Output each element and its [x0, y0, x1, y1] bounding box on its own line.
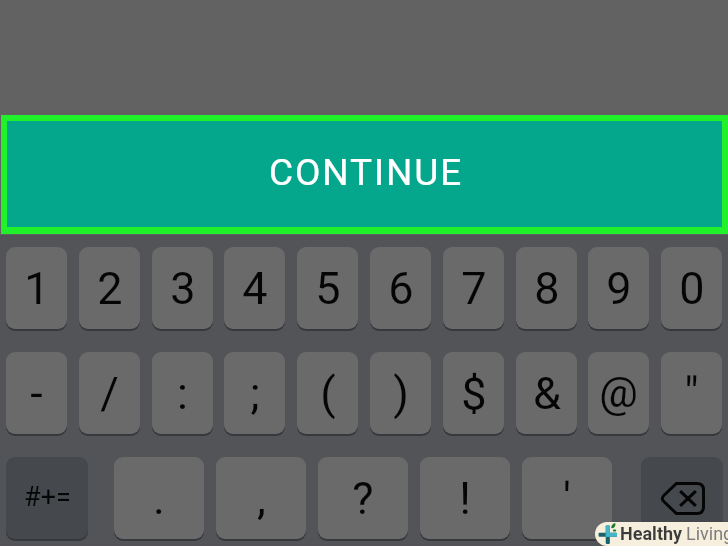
staticText: CONTINUE [269, 151, 464, 194]
staticText: ) [393, 367, 409, 420]
button[interactable]: 6 [370, 247, 431, 329]
staticText: ! [459, 472, 471, 525]
staticText: & [533, 367, 561, 420]
staticText: @ [599, 367, 638, 417]
staticText: 2 [97, 262, 123, 315]
staticText: 3 [170, 262, 196, 315]
button[interactable]: 8 [516, 247, 577, 329]
button[interactable]: : [152, 352, 213, 434]
button[interactable]: . [114, 457, 204, 539]
button[interactable]: ) [370, 352, 431, 434]
button[interactable]: ″ [661, 352, 722, 434]
staticText: 1 [24, 262, 50, 315]
staticText: - [30, 367, 43, 420]
button[interactable]: ? [318, 457, 408, 539]
staticText: Living [686, 523, 728, 544]
staticText: $ [461, 367, 487, 420]
button[interactable]: 1 [6, 247, 67, 329]
staticText: 4 [242, 262, 268, 315]
button[interactable]: , [216, 457, 306, 539]
staticText: : [177, 367, 188, 420]
button[interactable]: $ [443, 352, 504, 434]
staticText: 9 [606, 262, 632, 315]
button[interactable]: 4 [224, 247, 285, 329]
button[interactable]: 0 [661, 247, 722, 329]
button[interactable]: CONTINUE [7, 121, 722, 227]
button[interactable]: @ [588, 352, 649, 434]
button[interactable]: & [516, 352, 577, 434]
staticText: . [153, 472, 165, 525]
staticText: 7 [461, 262, 487, 315]
button[interactable]: 9 [588, 247, 649, 329]
button[interactable]: Backspace [641, 457, 723, 539]
staticText: ? [352, 472, 374, 525]
button[interactable]: ! [420, 457, 510, 539]
button[interactable]: - [6, 352, 67, 434]
staticText: , [257, 472, 266, 525]
button[interactable]: 2 [79, 247, 140, 329]
button[interactable]: 7 [443, 247, 504, 329]
staticText: ; [250, 367, 260, 420]
button[interactable]: 5 [297, 247, 358, 329]
button[interactable]: / [79, 352, 140, 434]
staticText: 6 [388, 262, 414, 315]
staticText: ′ [563, 472, 571, 525]
staticText: Healthy [620, 523, 683, 544]
staticText: ( [320, 367, 336, 420]
button[interactable]: ( [297, 352, 358, 434]
staticText: / [100, 367, 119, 420]
button[interactable]: Symbols [6, 457, 88, 539]
staticText: 5 [315, 262, 341, 315]
staticText: 8 [534, 262, 560, 315]
staticText: #+= [24, 481, 71, 513]
button[interactable]: ′ [522, 457, 612, 539]
button[interactable]: ; [224, 352, 285, 434]
staticText: 0 [679, 262, 705, 315]
button[interactable]: 3 [152, 247, 213, 329]
staticText: ″ [684, 367, 699, 420]
